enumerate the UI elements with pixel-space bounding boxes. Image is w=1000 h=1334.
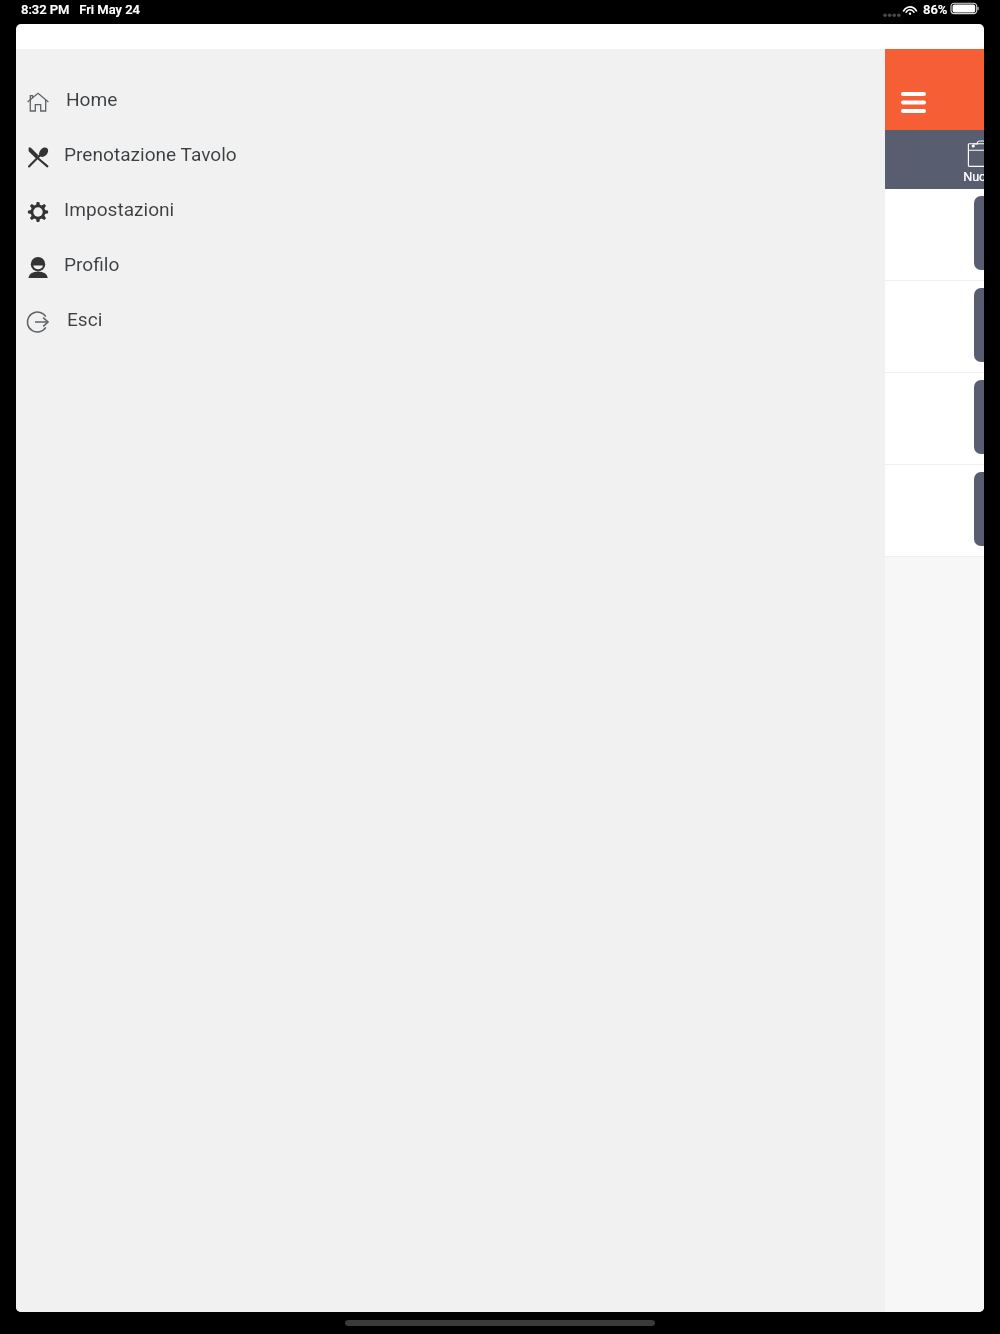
staticText: Home: [66, 88, 118, 110]
button[interactable]: [885, 373, 984, 465]
button[interactable]: [885, 465, 984, 557]
button[interactable]: Nuove: [947, 132, 984, 187]
staticText: Profilo: [64, 253, 120, 275]
button[interactable]: Impostazioni: [16, 184, 885, 239]
button[interactable]: Apri menu: [894, 81, 932, 123]
button[interactable]: [885, 281, 984, 373]
staticText: Nuove: [963, 169, 984, 184]
staticText: Esci: [67, 308, 103, 330]
staticText: 86%: [923, 2, 948, 17]
button[interactable]: Profilo: [16, 239, 885, 294]
button[interactable]: Prenotazione Tavolo: [16, 129, 885, 184]
button[interactable]: [885, 189, 984, 281]
staticText: 8:32 PM Fri May 24: [21, 2, 140, 17]
button[interactable]: Esci: [16, 294, 885, 349]
staticText: Prenotazione Tavolo: [64, 143, 237, 165]
button[interactable]: Home: [16, 74, 885, 129]
staticText: Impostazioni: [64, 198, 175, 220]
